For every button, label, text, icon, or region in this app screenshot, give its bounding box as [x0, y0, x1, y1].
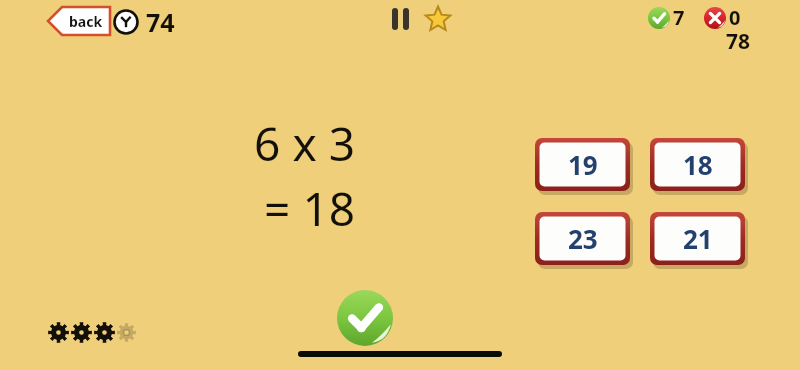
staticText: 21: [683, 221, 713, 256]
staticText: back: [69, 12, 103, 31]
button[interactable]: back: [48, 7, 110, 35]
staticText: 23: [568, 221, 598, 256]
button[interactable]: 21: [650, 212, 745, 265]
staticText: 7: [673, 4, 685, 31]
staticText: 6 x 3: [254, 112, 355, 175]
staticText: 74: [146, 5, 175, 39]
button[interactable]: 18: [650, 138, 745, 191]
button[interactable]: 19: [535, 138, 630, 191]
staticText: = 18: [264, 177, 355, 240]
staticText: 78: [726, 27, 751, 56]
button[interactable]: 23: [535, 212, 630, 265]
staticText: 0: [729, 4, 741, 31]
button[interactable]: Star: [424, 5, 452, 33]
button[interactable]: Pause: [387, 6, 413, 32]
staticText: 18: [683, 147, 713, 182]
button[interactable]: Difficulty: [48, 322, 136, 343]
staticText: 19: [568, 147, 598, 182]
